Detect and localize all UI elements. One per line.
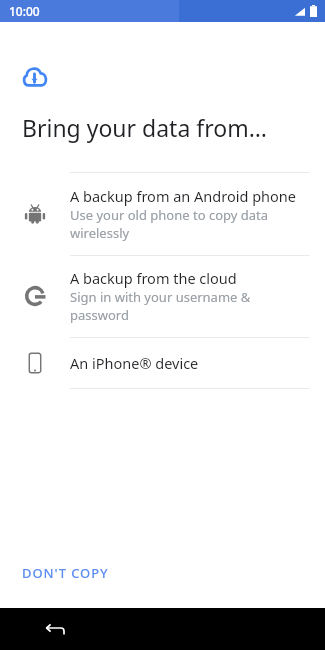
staticText: Use your old phone to copy data wireless… xyxy=(70,206,307,242)
staticText: Sign in with your username & password xyxy=(70,288,307,324)
staticText: DON'T COPY xyxy=(22,564,109,582)
button[interactable]: DON'T COPY xyxy=(0,556,131,590)
button[interactable]: iPhone device xyxy=(0,338,325,388)
staticText: 10:00 xyxy=(9,3,40,19)
button[interactable]: Android phone xyxy=(0,173,325,255)
staticText: A backup from the cloud xyxy=(70,268,237,288)
other: iPhone device xyxy=(24,352,46,374)
button[interactable]: Back xyxy=(40,614,70,644)
staticText: Bring your data from… xyxy=(22,112,267,143)
other: Android phone xyxy=(24,203,46,225)
other: Google cloud backup xyxy=(24,285,46,307)
button[interactable]: Google cloud backup xyxy=(0,256,325,337)
staticText: An iPhone® device xyxy=(70,353,199,373)
staticText: A backup from an Android phone xyxy=(70,186,296,206)
